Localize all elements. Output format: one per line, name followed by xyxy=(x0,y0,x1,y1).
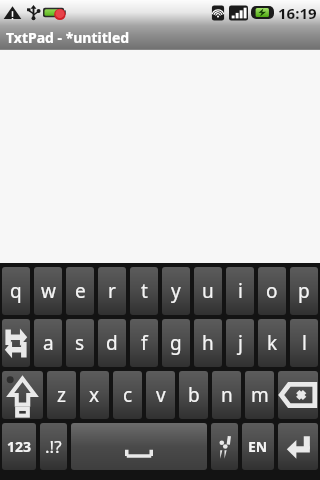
button[interactable]: Enter xyxy=(278,423,318,470)
staticText: h xyxy=(202,330,214,356)
button[interactable]: Backspace xyxy=(278,371,318,419)
staticText: 16:19 xyxy=(278,3,317,23)
staticText: v xyxy=(156,382,166,408)
staticText: p xyxy=(298,278,310,304)
button[interactable]: g xyxy=(162,319,190,367)
staticText: k xyxy=(267,330,278,356)
staticText: a xyxy=(43,330,54,356)
staticText: i xyxy=(238,278,243,304)
button[interactable]: j xyxy=(226,319,254,367)
staticText: m xyxy=(251,382,269,408)
button[interactable]: Tab xyxy=(2,319,30,367)
button[interactable]: o xyxy=(258,267,286,315)
button[interactable]: b xyxy=(179,371,208,419)
button[interactable]: l xyxy=(290,319,318,367)
staticText: EN xyxy=(248,437,268,456)
staticText: e xyxy=(75,278,86,304)
staticText: b xyxy=(188,382,200,408)
button[interactable]: Shift xyxy=(2,371,43,419)
button[interactable]: p xyxy=(290,267,318,315)
staticText: j xyxy=(238,330,243,356)
button[interactable]: a xyxy=(34,319,62,367)
button[interactable]: .!? xyxy=(40,423,67,470)
button[interactable]: i xyxy=(226,267,254,315)
button[interactable]: 123 xyxy=(2,423,36,470)
button[interactable]: v xyxy=(146,371,175,419)
staticText: g xyxy=(170,330,182,356)
staticText: o xyxy=(266,278,278,304)
button[interactable]: r xyxy=(98,267,126,315)
staticText: z xyxy=(57,382,66,408)
staticText: s xyxy=(75,330,85,356)
staticText: f xyxy=(141,330,148,356)
button[interactable]: h xyxy=(194,319,222,367)
button[interactable]: m xyxy=(245,371,274,419)
staticText: r xyxy=(108,278,116,304)
button[interactable]: Space xyxy=(71,423,207,470)
staticText: y xyxy=(171,278,181,304)
button[interactable]: s xyxy=(66,319,94,367)
button[interactable]: x xyxy=(80,371,109,419)
staticText: l xyxy=(302,330,307,356)
button[interactable]: k xyxy=(258,319,286,367)
button[interactable]: t xyxy=(130,267,158,315)
button[interactable]: Punctuation xyxy=(211,423,238,470)
button[interactable]: w xyxy=(34,267,62,315)
staticText: x xyxy=(89,382,100,408)
staticText: TxtPad - *untitled xyxy=(6,28,130,47)
staticText: d xyxy=(106,330,118,356)
staticText: w xyxy=(41,278,56,304)
button[interactable]: EN xyxy=(242,423,274,470)
staticText: q xyxy=(10,278,22,304)
staticText: .!? xyxy=(45,435,62,458)
button[interactable]: f xyxy=(130,319,158,367)
staticText: 123 xyxy=(7,437,32,456)
button[interactable]: u xyxy=(194,267,222,315)
staticText: n xyxy=(221,382,233,408)
button[interactable]: z xyxy=(47,371,76,419)
button[interactable]: n xyxy=(212,371,241,419)
button[interactable]: q xyxy=(2,267,30,315)
button[interactable]: e xyxy=(66,267,94,315)
staticText: u xyxy=(202,278,214,304)
button[interactable]: c xyxy=(113,371,142,419)
button[interactable]: y xyxy=(162,267,190,315)
button[interactable]: d xyxy=(98,319,126,367)
staticText: t xyxy=(141,278,148,304)
staticText: c xyxy=(123,382,133,408)
